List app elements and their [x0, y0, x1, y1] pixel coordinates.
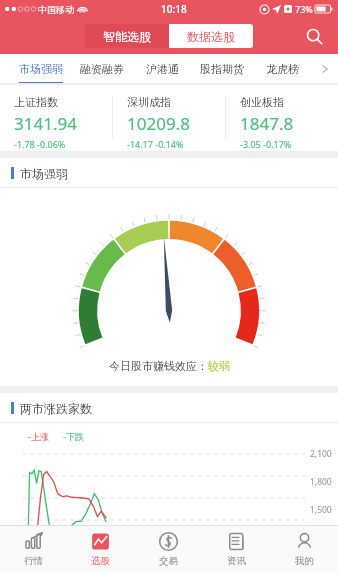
staticText: 73%: [295, 3, 313, 15]
staticText: 行情: [24, 555, 43, 567]
button[interactable]: 融资融券: [71, 54, 132, 84]
staticText: 交易: [159, 555, 178, 567]
staticText: 今日股市赚钱效应：: [109, 359, 208, 373]
staticText: 我的: [295, 555, 314, 567]
staticText: 深圳成指: [127, 95, 171, 109]
staticText: 2,100: [310, 448, 332, 460]
staticText: 1,500: [310, 504, 332, 516]
staticText: 股指期货: [200, 62, 244, 76]
staticText: 资讯: [227, 555, 246, 567]
staticText: 1847.8: [240, 112, 294, 135]
staticText: 市场强弱: [19, 62, 63, 76]
button[interactable]: More tabs: [312, 54, 338, 84]
button[interactable]: 深圳成指: [113, 85, 225, 151]
staticText: 上证指数: [14, 95, 58, 109]
staticText: 较弱: [208, 359, 230, 373]
button[interactable]: 行情: [0, 525, 67, 572]
staticText: 创业板指: [240, 95, 284, 109]
staticText: 市场强弱: [20, 166, 68, 181]
staticText: -3.05 -0.17%: [240, 138, 292, 150]
staticText: 融资融券: [80, 62, 124, 76]
staticText: 选股: [91, 555, 110, 567]
staticText: 3141.94: [14, 112, 77, 135]
button[interactable]: 交易: [134, 525, 202, 572]
staticText: -下跌: [63, 430, 84, 442]
staticText: 两市涨跌家数: [20, 401, 92, 416]
staticText: 数据选股: [187, 29, 235, 44]
staticText: -1.78 -0.06%: [14, 138, 66, 150]
button[interactable]: 资讯: [202, 525, 270, 572]
staticText: 龙虎榜: [266, 62, 299, 76]
staticText: -14.17 -0.14%: [127, 138, 184, 150]
staticText: 智能选股: [103, 29, 151, 44]
button[interactable]: 市场强弱: [10, 54, 71, 84]
button[interactable]: Search: [300, 22, 328, 50]
staticText: 中国移动: [38, 4, 74, 15]
button[interactable]: 数据选股: [169, 24, 253, 48]
button[interactable]: 创业板指: [226, 85, 338, 151]
staticText: 10:18: [161, 2, 187, 16]
staticText: 沪港通: [146, 62, 179, 76]
staticText: -上涨: [28, 430, 49, 442]
button[interactable]: 龙虎榜: [252, 54, 312, 84]
button[interactable]: 我的: [270, 525, 338, 572]
button[interactable]: 智能选股: [85, 24, 169, 48]
staticText: 1,800: [310, 476, 332, 488]
button[interactable]: 选股: [67, 525, 134, 572]
button[interactable]: 沪港通: [132, 54, 192, 84]
button[interactable]: 上证指数: [0, 85, 112, 151]
staticText: 10209.8: [127, 112, 190, 135]
button[interactable]: 股指期货: [192, 54, 252, 84]
